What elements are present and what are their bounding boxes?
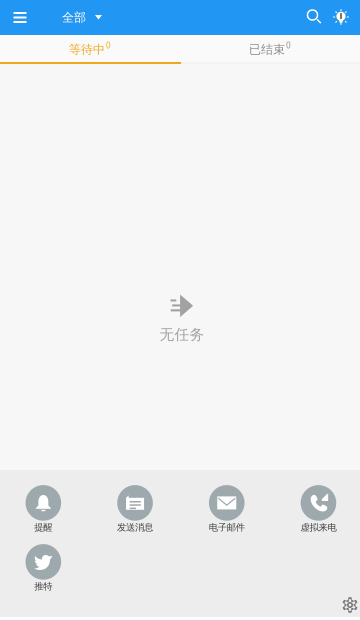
staticText: 虚拟来电 [300,522,336,533]
button[interactable]: 推特 [0,542,89,601]
button[interactable]: 等待中 [0,35,180,64]
staticText: 全部 [62,10,86,25]
staticText: 0 [106,40,111,51]
staticText: 无任务 [159,325,204,343]
button[interactable]: Menu [8,5,32,29]
button[interactable]: 提醒 [0,483,89,542]
staticText: 已结束 [249,42,285,57]
staticText: 提醒 [34,522,52,533]
staticText: 0 [286,40,291,51]
button[interactable]: Tips [332,8,350,26]
button[interactable]: 发送消息 [89,483,181,542]
staticText: 推特 [34,581,52,592]
button[interactable]: 已结束 [180,35,360,64]
button[interactable]: 虚拟来电 [273,483,360,542]
staticText: 等待中 [69,42,105,57]
button[interactable]: Settings [342,597,358,613]
button[interactable]: 电子邮件 [181,483,273,542]
button[interactable]: 全部 [40,0,110,35]
staticText: 电子邮件 [209,522,245,533]
staticText: 发送消息 [117,522,153,533]
button[interactable]: Search [306,8,324,26]
